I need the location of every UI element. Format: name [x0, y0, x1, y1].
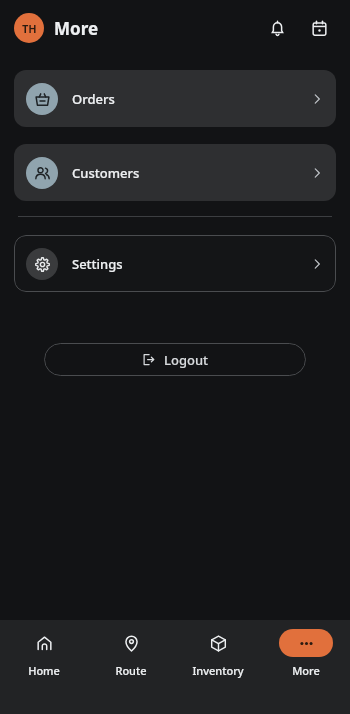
staticText: TH: [22, 21, 37, 36]
staticText: Route: [115, 663, 147, 678]
button[interactable]: Home: [0, 620, 87, 714]
button[interactable]: TH: [14, 13, 44, 43]
staticText: Inventory: [192, 663, 244, 678]
staticText: More: [292, 663, 320, 678]
button[interactable]: Route: [87, 620, 174, 714]
button[interactable]: Calendar: [302, 11, 336, 45]
button[interactable]: Inventory: [174, 620, 262, 714]
staticText: Logout: [164, 351, 209, 369]
staticText: Settings: [72, 255, 123, 273]
button[interactable]: Customers: [14, 144, 336, 201]
button[interactable]: Orders: [14, 70, 336, 127]
staticText: More: [54, 17, 99, 40]
button[interactable]: Settings: [14, 235, 336, 292]
staticText: Orders: [72, 90, 115, 108]
button[interactable]: More: [262, 620, 350, 714]
button[interactable]: Notifications: [260, 11, 294, 45]
staticText: Home: [28, 663, 60, 678]
staticText: Customers: [72, 164, 140, 182]
button[interactable]: Logout: [44, 343, 306, 376]
